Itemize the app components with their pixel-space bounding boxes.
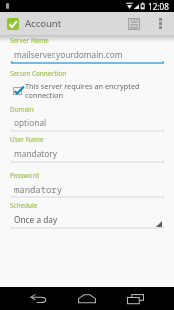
staticText: This server requires an encrypted connec… (25, 81, 143, 100)
button[interactable] (11, 32, 164, 64)
button[interactable]: Back (22, 287, 54, 310)
staticText: Server Name (10, 36, 49, 45)
button[interactable]: Save (122, 12, 146, 35)
staticText: Schedule (10, 201, 38, 210)
button[interactable] (11, 81, 163, 99)
button[interactable] (11, 101, 164, 132)
button[interactable]: More options (150, 12, 171, 35)
button[interactable]: Account (0, 12, 66, 35)
staticText: Domain (10, 105, 34, 114)
staticText: Account (25, 17, 62, 30)
button[interactable] (11, 131, 164, 163)
button[interactable] (11, 167, 164, 198)
staticText: Password (10, 171, 39, 180)
staticText: mandatory (14, 148, 57, 159)
button[interactable]: Home (71, 287, 103, 310)
button[interactable]: Recent apps (119, 287, 151, 310)
staticText: mailserver.yourdomain.com (14, 49, 123, 60)
staticText: mandatory (14, 183, 63, 195)
staticText: Once a day (14, 214, 58, 225)
staticText: User Name (10, 135, 44, 144)
staticText: Secure Connection (10, 69, 67, 78)
staticText: optional (14, 117, 47, 128)
button[interactable] (11, 197, 164, 229)
staticText: 12:08 (148, 1, 169, 12)
